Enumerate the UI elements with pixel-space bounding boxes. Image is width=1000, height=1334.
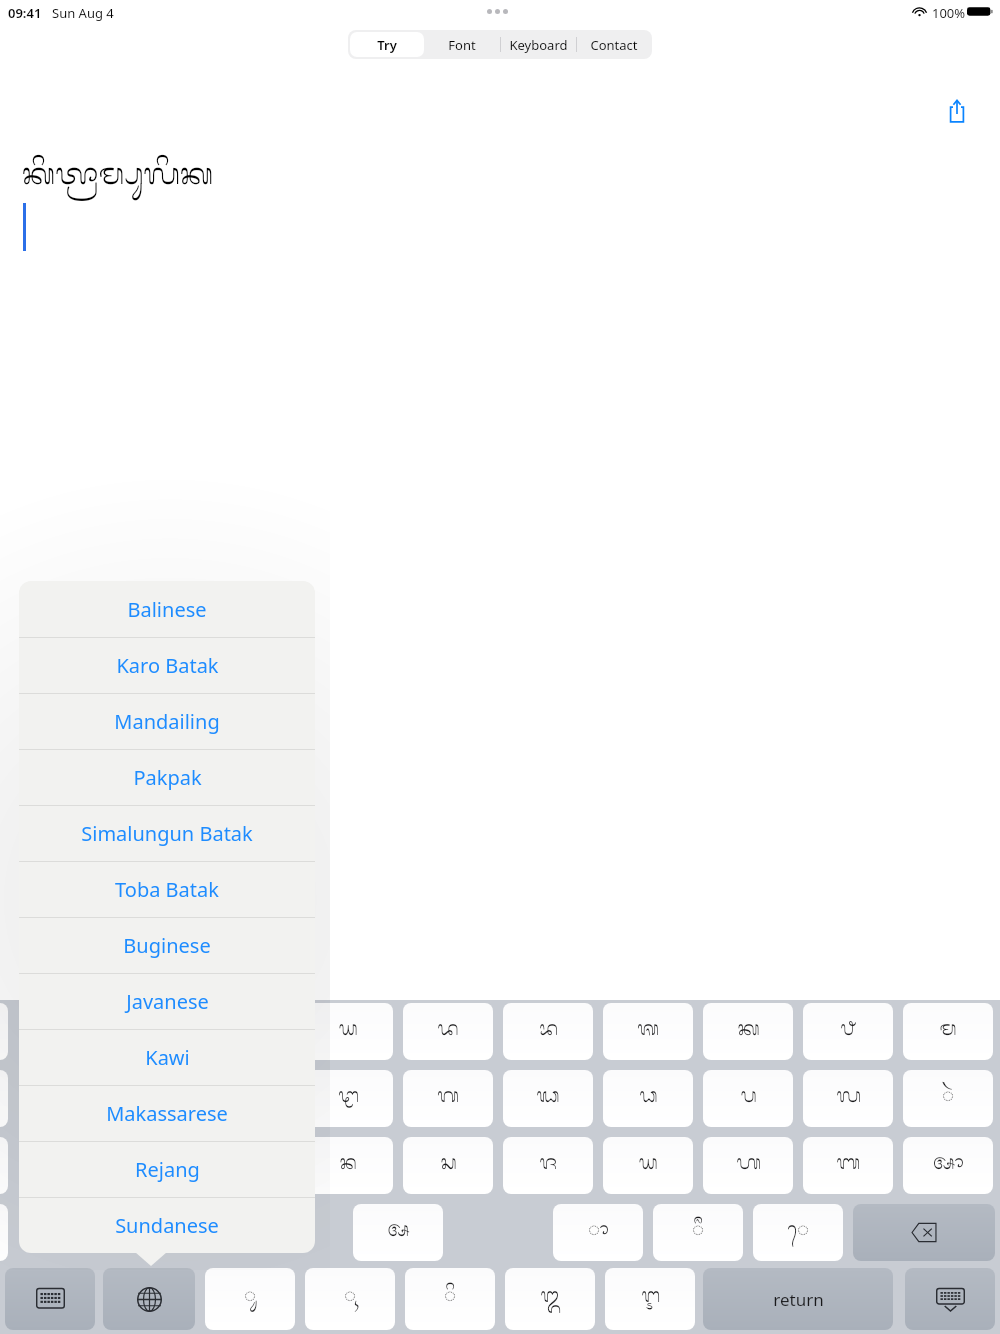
button[interactable]: Backspace bbox=[853, 1204, 995, 1261]
staticText: ᬥ bbox=[639, 1081, 658, 1117]
button[interactable]: Balinese bbox=[19, 581, 315, 637]
button[interactable]: Simalungun Batak bbox=[19, 805, 315, 861]
staticText: ᬓᬶᬢ᭄ᬭᬵᬫ᭄ᬧᬸᬮᬶᬓ bbox=[22, 152, 214, 206]
staticText: ᬬ bbox=[638, 1148, 658, 1184]
staticText: Karo Batak bbox=[116, 652, 219, 679]
button[interactable]: ᬧ bbox=[703, 1070, 793, 1127]
button[interactable]: ᬬ bbox=[603, 1137, 693, 1194]
button[interactable]: Karo Batak bbox=[19, 637, 315, 693]
button[interactable]: ᬆ bbox=[903, 1137, 993, 1194]
staticText: ᬦ bbox=[339, 1148, 357, 1184]
staticText: Simalungun Batak bbox=[81, 820, 253, 847]
button[interactable]: Toba Batak bbox=[19, 861, 315, 917]
button[interactable]: ᬰ bbox=[603, 1003, 693, 1060]
staticText: ᬅ bbox=[387, 1215, 410, 1251]
staticText: ᬃ bbox=[942, 1081, 954, 1117]
staticText: ᬹ bbox=[344, 1281, 356, 1317]
staticText: ᬾ bbox=[787, 1215, 809, 1251]
button[interactable]: ᬮ bbox=[803, 1070, 893, 1127]
button[interactable]: ᬬ bbox=[303, 1003, 393, 1060]
staticText: Makassarese bbox=[106, 1100, 228, 1127]
button[interactable]: ᬅ bbox=[0, 1204, 8, 1261]
button[interactable]: Makassarese bbox=[19, 1085, 315, 1141]
button[interactable]: ᬫ bbox=[903, 1003, 993, 1060]
button[interactable]: Font bbox=[424, 30, 500, 59]
button[interactable]: ᬦ bbox=[303, 1137, 393, 1194]
staticText: ᬚ bbox=[539, 1148, 557, 1184]
button[interactable]: ᬲ bbox=[403, 1137, 493, 1194]
staticText: ᬕ bbox=[437, 1081, 459, 1117]
staticText: ᬤ bbox=[437, 1014, 459, 1050]
staticText: Balinese bbox=[127, 596, 207, 623]
button[interactable]: Javanese bbox=[19, 973, 315, 1029]
button[interactable]: Hide keyboard bbox=[905, 1268, 995, 1330]
staticText: ᬰ bbox=[637, 1014, 659, 1050]
staticText: Javanese bbox=[126, 988, 209, 1015]
staticText: 100% bbox=[932, 4, 966, 22]
button[interactable]: ᬚ bbox=[503, 1137, 593, 1194]
button[interactable]: ᬃ bbox=[903, 1070, 993, 1127]
staticText: Toba Batak bbox=[115, 876, 219, 903]
button[interactable]: ᬤ bbox=[403, 1003, 493, 1060]
button[interactable]: ᬪ bbox=[503, 1003, 593, 1060]
staticText: ᬆ bbox=[933, 1148, 964, 1184]
staticText: 09:41 bbox=[8, 4, 42, 22]
button[interactable]: return bbox=[703, 1268, 893, 1330]
staticText: ᬨ bbox=[840, 1014, 856, 1050]
button[interactable]: ᬖ bbox=[503, 1070, 593, 1127]
button[interactable]: ᬷ bbox=[653, 1204, 743, 1261]
button[interactable]: ᬹ bbox=[305, 1268, 395, 1330]
staticText: ᬩ bbox=[836, 1148, 860, 1184]
button[interactable]: Keyboard bbox=[500, 30, 576, 59]
staticText: ᬪ bbox=[539, 1014, 558, 1050]
staticText: Buginese bbox=[123, 932, 211, 959]
button[interactable]: Sundanese bbox=[19, 1197, 315, 1253]
staticText: Pakpak bbox=[133, 764, 202, 791]
staticText: ᬝ bbox=[338, 1081, 359, 1117]
button[interactable]: ᬇ bbox=[605, 1268, 695, 1330]
button[interactable]: Mandailing bbox=[19, 693, 315, 749]
staticText: ᬇ bbox=[641, 1281, 660, 1317]
staticText: ᬲ bbox=[440, 1148, 457, 1184]
button[interactable]: Share bbox=[936, 90, 978, 132]
button[interactable]: ᬑ bbox=[505, 1268, 595, 1330]
button[interactable]: ᬳ bbox=[703, 1137, 793, 1194]
staticText: ᬖ bbox=[536, 1081, 560, 1117]
button[interactable]: Pakpak bbox=[19, 749, 315, 805]
staticText: Rejang bbox=[135, 1156, 200, 1183]
button[interactable]: ᬓ bbox=[703, 1003, 793, 1060]
staticText: Try bbox=[377, 36, 397, 54]
staticText: Font bbox=[448, 36, 476, 54]
button[interactable]: ᬩ bbox=[803, 1137, 893, 1194]
staticText: ᬶ bbox=[444, 1281, 456, 1317]
staticText: ᬷ bbox=[692, 1215, 704, 1251]
staticText: ᬸ bbox=[244, 1281, 256, 1317]
button[interactable]: ᬕ bbox=[403, 1070, 493, 1127]
button[interactable]: ᬝ bbox=[303, 1070, 393, 1127]
staticText: ᬬ bbox=[338, 1014, 358, 1050]
button[interactable]: ᬵ bbox=[553, 1204, 643, 1261]
staticText: ᬮ bbox=[836, 1081, 861, 1117]
button[interactable]: ᬥ bbox=[603, 1070, 693, 1127]
button[interactable]: ᬶ bbox=[405, 1268, 495, 1330]
button[interactable]: ᬦ bbox=[0, 1137, 8, 1194]
staticText: ᬳ bbox=[736, 1148, 761, 1184]
button[interactable]: ᬾ bbox=[753, 1204, 843, 1261]
staticText: Sundanese bbox=[115, 1212, 219, 1239]
button[interactable]: Kawi bbox=[19, 1029, 315, 1085]
button[interactable]: Keyboard layout bbox=[5, 1268, 95, 1330]
staticText: return bbox=[773, 1288, 824, 1311]
button[interactable]: ᬝ bbox=[0, 1070, 8, 1127]
button[interactable]: ᬬ bbox=[0, 1003, 8, 1060]
button[interactable]: ᬸ bbox=[205, 1268, 295, 1330]
button[interactable]: Contact bbox=[576, 30, 652, 59]
staticText: Sun Aug 4 bbox=[52, 4, 114, 22]
staticText: ᬑ bbox=[540, 1281, 560, 1317]
button[interactable]: Switch keyboard language bbox=[103, 1268, 195, 1330]
button[interactable]: Try bbox=[350, 30, 424, 59]
button[interactable]: ᬨ bbox=[803, 1003, 893, 1060]
button[interactable]: Rejang bbox=[19, 1141, 315, 1197]
button[interactable]: Buginese bbox=[19, 917, 315, 973]
staticText: Contact bbox=[590, 36, 638, 54]
button[interactable]: ᬅ bbox=[353, 1204, 443, 1261]
